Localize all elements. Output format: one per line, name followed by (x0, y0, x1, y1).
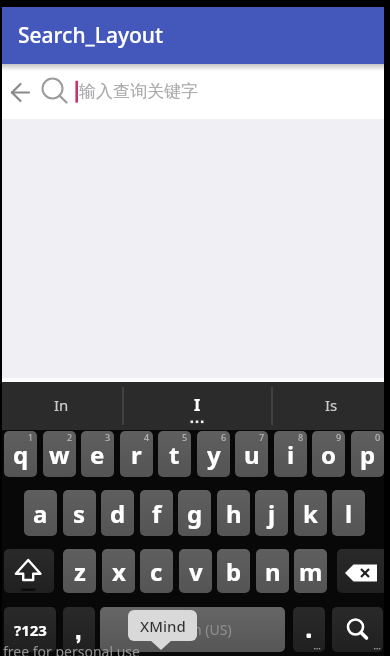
staticText: In (54, 395, 69, 415)
button[interactable]: English (US) (100, 607, 285, 652)
staticText: c (150, 555, 163, 588)
button[interactable]: n (256, 549, 289, 593)
staticText: l (345, 497, 353, 530)
staticText: w (49, 438, 70, 471)
staticText: 5 (182, 431, 188, 443)
staticText: f (152, 497, 162, 530)
staticText: y (207, 438, 221, 471)
staticText: 1 (28, 431, 34, 443)
staticText: English (US) (154, 620, 232, 639)
button[interactable]: k (294, 490, 327, 536)
staticText: XMind (140, 616, 186, 636)
button[interactable]: f (140, 490, 173, 536)
button[interactable]: x (102, 549, 135, 593)
staticText: q (13, 438, 29, 471)
button[interactable]: o (312, 431, 345, 477)
staticText: s (73, 497, 86, 530)
button[interactable]: q (4, 431, 37, 477)
button[interactable]: In (0, 382, 123, 427)
button[interactable]: w (43, 431, 76, 477)
button[interactable]: m (294, 549, 327, 593)
button[interactable] (332, 607, 383, 652)
button[interactable]: XMind (128, 610, 197, 641)
button[interactable]: u (235, 431, 268, 477)
staticText: free for personal use (3, 642, 140, 656)
staticText: 3 (105, 431, 111, 443)
staticText: v (189, 555, 203, 588)
staticText: n (265, 555, 281, 588)
button[interactable]: s (63, 490, 96, 536)
button[interactable]: Search_Layout (0, 7, 390, 64)
button[interactable]: y (197, 431, 230, 477)
staticText: 4 (144, 431, 150, 443)
staticText: 7 (259, 431, 265, 443)
staticText: b (226, 555, 242, 588)
staticText: Search_Layout (18, 21, 164, 50)
button[interactable]: e (81, 431, 114, 477)
staticText: p (360, 438, 376, 471)
button[interactable]: c (140, 549, 173, 593)
button[interactable] (337, 549, 387, 593)
staticText: k (303, 497, 318, 530)
button[interactable]: a (24, 490, 57, 536)
button[interactable] (0, 119, 390, 378)
staticText: I (194, 394, 201, 416)
staticText: e (90, 438, 105, 471)
button[interactable] (293, 607, 325, 652)
button[interactable] (0, 64, 42, 119)
staticText: g (187, 497, 203, 530)
staticText: t (169, 438, 180, 471)
staticText: 输入查询关键字 (79, 81, 198, 102)
staticText: d (110, 497, 126, 530)
button[interactable]: Is (272, 382, 390, 427)
staticText: 9 (336, 431, 342, 443)
button[interactable]: p (351, 431, 384, 477)
button[interactable]: r (120, 431, 153, 477)
button[interactable]: l (332, 490, 365, 536)
staticText: x (112, 555, 126, 588)
staticText: 0 (375, 431, 381, 443)
button[interactable]: I (123, 382, 272, 427)
button[interactable] (63, 607, 95, 652)
staticText: 6 (221, 431, 227, 443)
button[interactable]: h (217, 490, 250, 536)
button[interactable]: t (158, 431, 191, 477)
staticText: i (287, 438, 295, 471)
staticText: r (131, 438, 142, 471)
button[interactable]: b (217, 549, 250, 593)
staticText: Is (325, 395, 338, 415)
button[interactable]: d (101, 490, 134, 536)
staticText: m (299, 555, 323, 588)
button[interactable]: j (255, 490, 288, 536)
button[interactable]: v (179, 549, 212, 593)
staticText: z (74, 555, 86, 588)
button[interactable]: z (63, 549, 96, 593)
button[interactable] (4, 549, 54, 593)
button[interactable]: i (274, 431, 307, 477)
staticText: a (33, 497, 48, 530)
staticText: u (244, 438, 260, 471)
button[interactable]: g (178, 490, 211, 536)
staticText: ?123 (14, 620, 47, 640)
staticText: 2 (67, 431, 73, 443)
staticText: h (226, 497, 242, 530)
staticText: 8 (298, 431, 304, 443)
staticText: o (321, 438, 336, 471)
staticText: j (268, 497, 276, 530)
button[interactable]: ?123 (4, 607, 56, 652)
